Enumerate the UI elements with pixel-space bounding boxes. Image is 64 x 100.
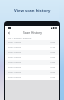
staticText: Scan 4 result [8,56,22,59]
button[interactable]: Back [6,30,11,35]
staticText: Scan 8 result [8,76,22,79]
staticText: Scan 3 result [8,51,22,54]
staticText: 14:30 [50,61,56,64]
staticText: Scan 7 result [8,71,22,74]
button[interactable]: Scan 6 result [5,65,59,70]
staticText: Scan 6 result [8,66,22,69]
button[interactable]: Scan 8 result [5,75,59,80]
staticText: No. / profile / balance [8,37,32,40]
staticText: 15:30 [50,66,56,69]
staticText: 12:30 [50,51,56,54]
button[interactable]: Scan 2 result [5,45,59,50]
button[interactable]: Scan 1 result [5,40,59,45]
staticText: Scan 2 result [8,46,22,49]
button[interactable]: Scan 3 result [5,50,59,55]
staticText: 10:30 [50,41,56,44]
button[interactable]: Scan 5 result [5,60,59,65]
staticText: 16:30 [50,71,56,74]
staticText: Scan 1 result [8,41,22,44]
staticText: Scan 5 result [8,61,22,64]
staticText: Scan History [23,31,42,35]
staticText: 11:30 [50,46,56,49]
staticText: View scan history [14,8,51,14]
button[interactable]: Scan 4 result [5,55,59,60]
staticText: 13:30 [50,56,56,59]
staticText: 17:30 [50,76,56,79]
button[interactable]: Scan 7 result [5,70,59,75]
